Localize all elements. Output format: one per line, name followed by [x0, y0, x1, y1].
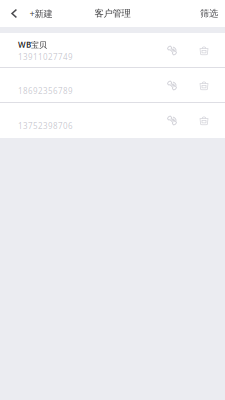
staticText: 13911027749: [18, 52, 73, 62]
staticText: 13752398706: [18, 121, 73, 131]
button[interactable]: [0, 103, 225, 138]
button[interactable]: Call 13911027749: [156, 33, 188, 68]
staticText: 筛选: [200, 8, 218, 19]
button[interactable]: Call 18692356789: [156, 68, 188, 103]
button[interactable]: +新建: [0, 1, 52, 26]
staticText: 18692356789: [18, 86, 73, 96]
button[interactable]: 筛选: [200, 2, 225, 25]
staticText: 客户管理: [94, 8, 130, 19]
button[interactable]: WB宝贝: [0, 33, 225, 68]
staticText: +新建: [29, 7, 52, 20]
button[interactable]: [0, 68, 225, 103]
staticText: WB宝贝: [18, 39, 47, 50]
button[interactable]: Delete 18692356789: [188, 68, 220, 103]
button[interactable]: Delete 13911027749: [188, 33, 220, 68]
button[interactable]: Call 13752398706: [156, 103, 188, 138]
button[interactable]: Delete 13752398706: [188, 103, 220, 138]
